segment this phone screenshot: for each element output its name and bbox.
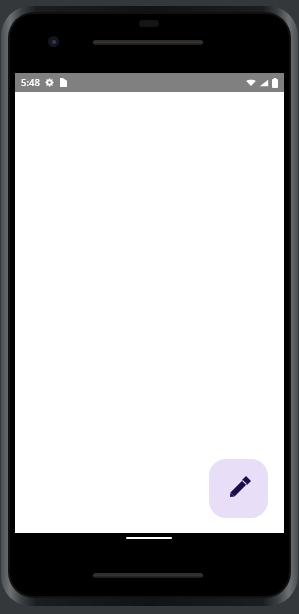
staticText: 5:48 — [21, 76, 40, 89]
button[interactable]: Edit — [209, 459, 268, 518]
